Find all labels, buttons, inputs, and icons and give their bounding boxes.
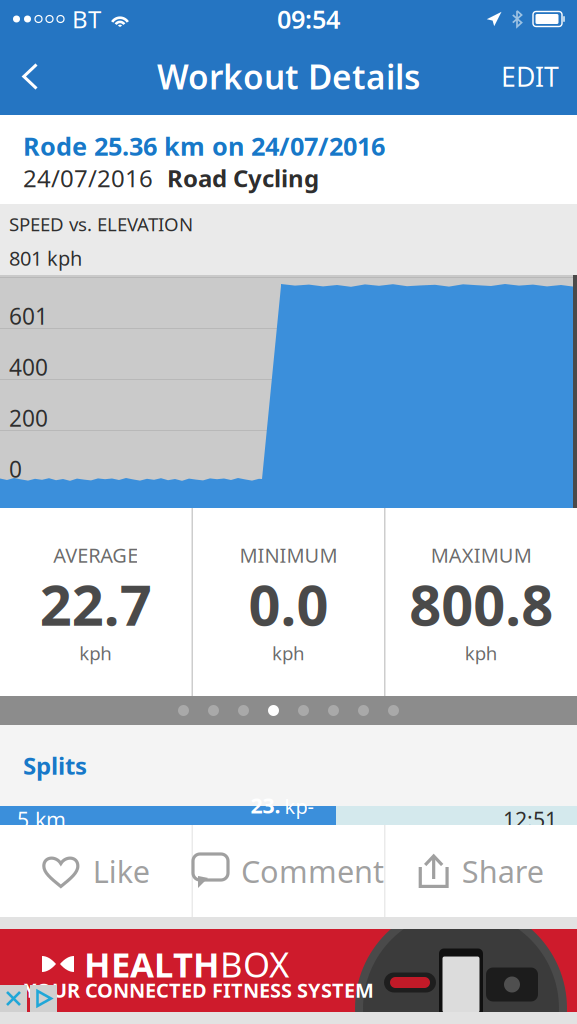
staticText: HEALTH [84,941,220,987]
button[interactable]: Close ad [0,985,27,1012]
staticText: 601 [9,301,48,331]
staticText: 800.8 [409,567,553,641]
staticText: EDIT [501,59,559,94]
staticText: kph [272,641,305,665]
staticText: 5 km [17,805,66,834]
staticText: 200 [9,403,48,433]
button[interactable]: Share [385,825,577,917]
button[interactable]: Like [0,825,192,917]
staticText: Share [462,851,544,891]
staticText: MAXIMUM [431,542,532,568]
staticText: 09:54 [277,2,340,36]
staticText: 0 [9,454,22,484]
staticText: Like [93,851,150,891]
staticText: 24/07/2016 [23,162,153,194]
staticText: 801 kph [9,245,82,271]
staticText: BT [72,3,101,35]
staticText: kph [284,793,313,846]
staticText: Workout Details [157,54,420,99]
staticText: 12:51 [503,805,557,834]
staticText: 22.7 [40,567,152,641]
staticText: AVERAGE [53,542,138,568]
staticText: kph [465,641,498,665]
staticText: Splits [23,750,87,781]
button[interactable]: EDIT [483,45,577,108]
staticText: Road Cycling [167,162,319,194]
staticText: Rode 25.36 km on 24/07/2016 [23,129,385,163]
staticText: 23.3 [250,791,280,848]
button[interactable]: Back [0,51,61,102]
staticText: Comment [241,851,384,891]
staticText: kph [79,641,112,665]
button[interactable]: Comment [193,825,384,917]
staticText: BOX [220,941,289,987]
staticText: 400 [9,352,48,382]
staticText: MINIMUM [239,542,337,568]
staticText: SPEED vs. ELEVATION [9,212,193,236]
staticText: YOUR CONNECTED FITNESS SYSTEM [24,977,374,1003]
button[interactable]: Ad choices [30,985,57,1012]
staticText: 0.0 [248,567,328,641]
